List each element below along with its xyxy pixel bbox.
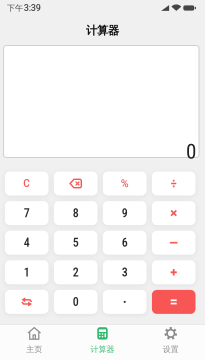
- button[interactable]: .: [103, 290, 146, 314]
- staticText: 计算器: [86, 23, 119, 37]
- button[interactable]: =: [152, 290, 195, 314]
- button[interactable]: +: [152, 260, 195, 284]
- staticText: 5: [73, 236, 79, 250]
- button[interactable]: 2: [54, 260, 97, 284]
- staticText: 设置: [163, 344, 179, 354]
- button[interactable]: 5: [54, 231, 97, 255]
- button[interactable]: 1: [5, 260, 48, 284]
- button[interactable]: %: [103, 171, 146, 195]
- staticText: 6: [122, 236, 128, 250]
- staticText: 2: [73, 265, 79, 279]
- staticText: 8: [73, 206, 79, 220]
- staticText: 计算器: [90, 344, 114, 354]
- button[interactable]: 3: [103, 260, 146, 284]
- staticText: %: [121, 177, 129, 190]
- staticText: 9: [122, 206, 128, 220]
- button[interactable]: 7: [5, 201, 48, 225]
- button[interactable]: C: [5, 171, 48, 195]
- staticText: C: [23, 178, 30, 189]
- button[interactable]: 主页: [0, 325, 68, 360]
- button[interactable]: 8: [54, 201, 97, 225]
- button[interactable]: 6: [103, 231, 146, 255]
- staticText: 主页: [26, 344, 42, 354]
- button[interactable]: Exchange: [5, 290, 48, 314]
- staticText: 下午: [7, 3, 23, 13]
- button[interactable]: ÷: [152, 171, 195, 195]
- staticText: 4: [24, 236, 30, 250]
- button[interactable]: 0: [54, 290, 97, 314]
- button[interactable]: ×: [152, 201, 195, 225]
- button[interactable]: 计算器: [68, 325, 136, 360]
- staticText: 3: [122, 265, 128, 279]
- staticText: 0: [73, 295, 79, 309]
- button[interactable]: 9: [103, 201, 146, 225]
- staticText: 1: [24, 265, 30, 279]
- button[interactable]: −: [152, 231, 195, 255]
- staticText: 0: [186, 139, 196, 164]
- button[interactable]: 设置: [137, 325, 205, 360]
- staticText: 7: [24, 206, 30, 220]
- button[interactable]: Backspace: [54, 171, 97, 195]
- button[interactable]: 4: [5, 231, 48, 255]
- staticText: 3:39: [24, 3, 41, 13]
